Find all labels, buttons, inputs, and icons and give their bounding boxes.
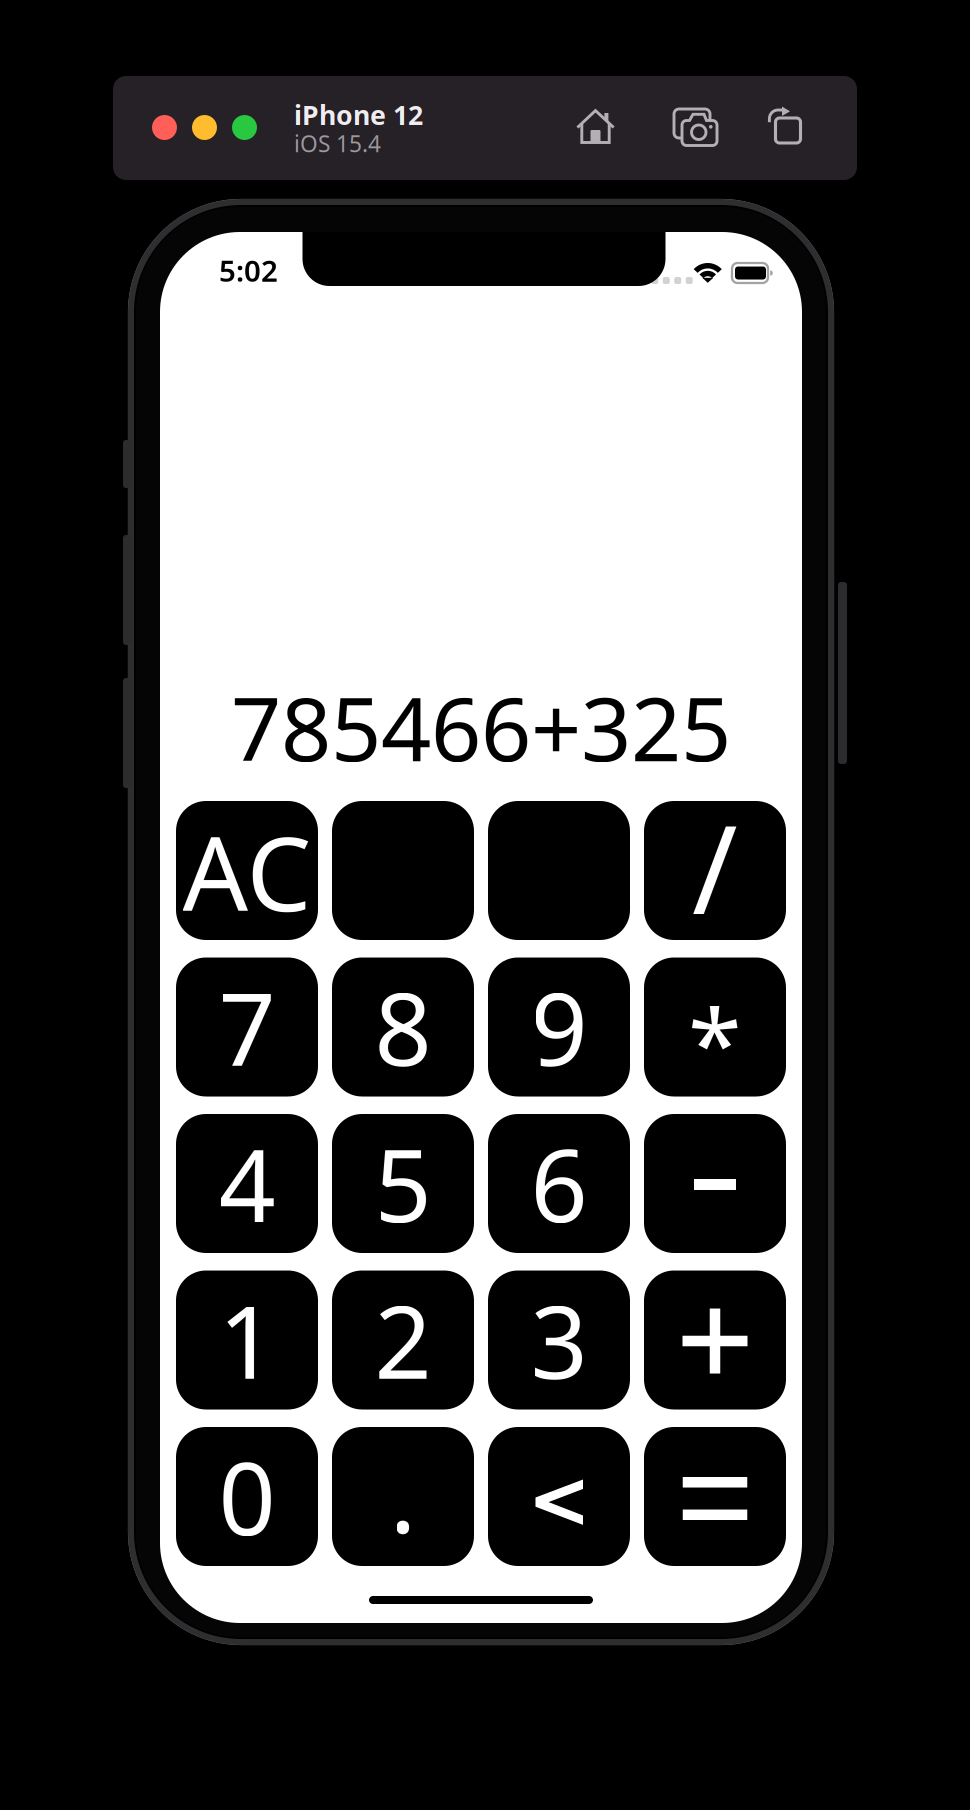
staticText: 6	[530, 1117, 587, 1250]
button[interactable]: Empty	[332, 801, 474, 940]
button[interactable]: Close	[152, 115, 177, 140]
button[interactable]: 4	[176, 1114, 318, 1253]
button[interactable]: Decimal point	[332, 1427, 474, 1566]
button[interactable]: 7	[176, 957, 318, 1096]
button[interactable]: Multiply	[644, 957, 786, 1096]
button[interactable]: Minus	[644, 1114, 786, 1253]
staticText: 5:02	[219, 251, 278, 290]
staticText: 2	[374, 1274, 431, 1406]
button[interactable]: Screenshot	[674, 109, 718, 147]
staticText: 5	[374, 1117, 431, 1250]
staticText: /	[692, 785, 738, 948]
button[interactable]: Minimize	[192, 115, 217, 140]
staticText: iOS 15.4	[294, 128, 381, 158]
staticText: 0	[218, 1430, 275, 1563]
button[interactable]: Zoom	[232, 115, 257, 140]
button[interactable]: 3	[488, 1270, 630, 1409]
staticText: 785466+325	[231, 669, 731, 785]
button[interactable]: Equals	[644, 1427, 786, 1566]
button[interactable]: 8	[332, 957, 474, 1096]
button[interactable]: Divide	[644, 801, 786, 940]
staticText: *	[688, 977, 742, 1107]
staticText: 4	[218, 1117, 275, 1250]
staticText: 3	[530, 1274, 587, 1406]
button[interactable]: Home	[576, 109, 615, 144]
button[interactable]: 2	[332, 1270, 474, 1409]
staticText: .	[389, 1428, 416, 1561]
staticText: AC	[182, 803, 311, 940]
staticText: 7	[218, 961, 275, 1093]
button[interactable]: 5	[332, 1114, 474, 1253]
button[interactable]: Backspace	[488, 1427, 630, 1566]
button[interactable]: 6	[488, 1114, 630, 1253]
button[interactable]: 9	[488, 957, 630, 1096]
button[interactable]: Empty	[488, 801, 630, 940]
button[interactable]: 0	[176, 1427, 318, 1566]
staticText: 9	[530, 961, 587, 1093]
staticText: 1	[218, 1274, 275, 1406]
staticText: 8	[374, 961, 431, 1093]
button[interactable]: 1	[176, 1270, 318, 1409]
button[interactable]: Plus	[644, 1270, 786, 1409]
staticText: iPhone 12	[294, 97, 423, 132]
button[interactable]: Rotate	[768, 106, 801, 144]
button[interactable]: All clear	[176, 801, 318, 940]
